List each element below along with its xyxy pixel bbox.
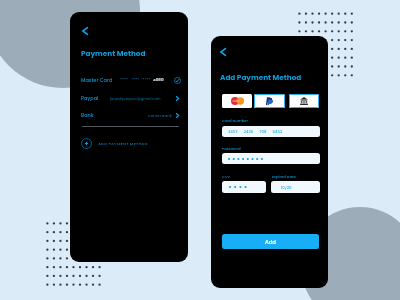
button[interactable]: Mastercard xyxy=(222,94,252,108)
staticText: Add xyxy=(265,238,276,245)
staticText: 4080 xyxy=(153,77,164,83)
button[interactable]: PayPal xyxy=(254,94,285,108)
staticText: Paypal xyxy=(81,95,99,102)
staticText: Expired Date xyxy=(272,174,296,179)
staticText: **** **** **** xyxy=(120,77,151,83)
staticText: Bank xyxy=(81,112,94,119)
button[interactable]: Bank xyxy=(81,109,179,121)
button[interactable]: Back xyxy=(77,23,92,38)
button[interactable] xyxy=(222,181,266,193)
staticText: 3453 2436 708 6452 xyxy=(228,129,283,134)
button[interactable]: Add xyxy=(222,234,319,249)
button[interactable]: Bank xyxy=(289,94,319,108)
button[interactable]: Master Card xyxy=(81,74,179,86)
staticText: CVV xyxy=(222,174,231,179)
button[interactable]: Back xyxy=(215,44,230,59)
button[interactable]: 10/20 xyxy=(271,181,320,193)
staticText: Master Card xyxy=(81,77,113,84)
staticText: Center Bank xyxy=(148,113,172,118)
staticText: ADD PAYMENT METHOD xyxy=(98,141,148,146)
staticText: Password xyxy=(222,146,241,151)
button[interactable] xyxy=(222,153,320,164)
button[interactable]: 3453 2436 708 6452 xyxy=(222,126,320,137)
button[interactable]: ADD PAYMENT METHOD xyxy=(81,136,148,150)
staticText: Payment Method xyxy=(81,48,146,58)
staticText: janeshjonsonn@gmail.com xyxy=(110,96,161,101)
staticText: Add Payment Method xyxy=(220,72,302,82)
staticText: 10/20 xyxy=(281,185,292,190)
button[interactable]: Paypal xyxy=(81,92,179,104)
staticText: Card Number xyxy=(222,118,249,123)
